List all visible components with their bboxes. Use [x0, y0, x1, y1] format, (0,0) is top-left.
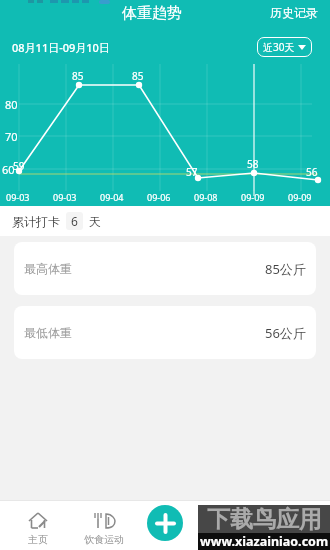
staticText: www.xiazainiao.com: [200, 533, 329, 550]
staticText: 6: [71, 213, 78, 229]
staticText: 累计打卡: [12, 214, 60, 229]
staticText: 08月11日-09月10日: [12, 40, 110, 55]
staticText: 最低体重: [24, 325, 72, 340]
staticText: 09-03: [6, 191, 30, 203]
staticText: 85: [132, 69, 144, 83]
staticText: 09-04: [100, 191, 124, 203]
staticText: 58: [247, 157, 259, 171]
staticText: 主页: [28, 533, 48, 546]
button[interactable]: 饮食运动: [74, 500, 134, 550]
staticText: 天: [89, 214, 101, 229]
button[interactable]: 近30天: [257, 37, 312, 57]
staticText: 09-09: [241, 191, 265, 203]
staticText: 70: [5, 129, 18, 144]
staticText: 85公斤: [265, 260, 306, 278]
button[interactable]: 主页: [8, 500, 68, 550]
staticText: 历史记录: [270, 5, 318, 20]
button[interactable]: 历史记录: [270, 5, 318, 20]
staticText: 57: [186, 165, 198, 179]
staticText: 最高体重: [24, 261, 72, 276]
staticText: 60: [2, 162, 15, 177]
staticText: 80: [5, 97, 18, 112]
button[interactable]: 最低体重: [14, 306, 316, 359]
staticText: 59: [13, 159, 25, 173]
staticText: 09-09: [288, 191, 312, 203]
staticText: 85: [72, 69, 84, 83]
staticText: 下载鸟应用: [207, 505, 322, 533]
button[interactable]: 最高体重: [14, 242, 316, 295]
staticText: 近30天: [263, 40, 295, 54]
staticText: 09-08: [194, 191, 218, 203]
staticText: 56: [306, 165, 318, 179]
button[interactable]: [147, 505, 183, 541]
staticText: 09-03: [53, 191, 77, 203]
staticText: 体重趋势: [122, 4, 182, 23]
staticText: 饮食运动: [84, 533, 124, 546]
staticText: 09-06: [147, 191, 171, 203]
staticText: 56公斤: [265, 324, 306, 342]
